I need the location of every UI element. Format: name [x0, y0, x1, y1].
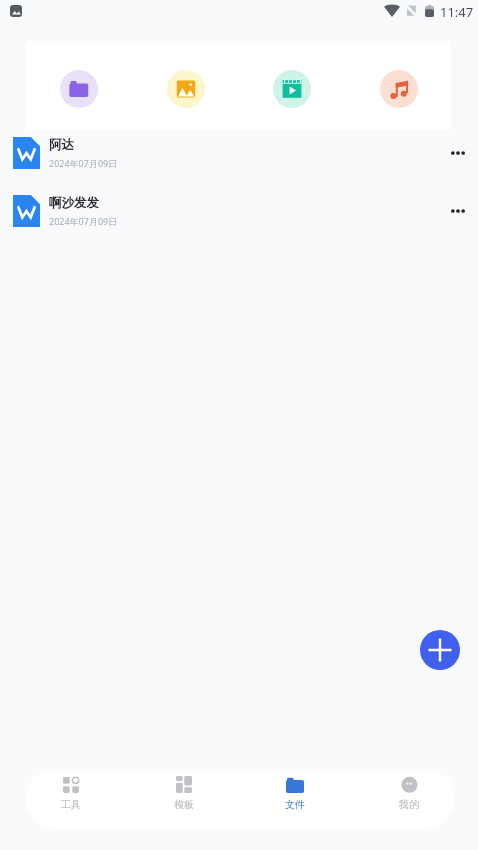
button[interactable]: 工具	[43, 769, 99, 828]
button[interactable]	[60, 70, 98, 108]
staticText: 我的	[399, 798, 419, 811]
button[interactable]: More options	[436, 131, 478, 175]
button[interactable]: 我的	[381, 769, 437, 828]
button[interactable]	[167, 70, 205, 108]
button[interactable]: More options	[436, 189, 478, 233]
staticText: 啊沙发发	[49, 195, 99, 211]
staticText: 2024年07月09日	[49, 215, 118, 227]
button[interactable]: 啊沙发发	[0, 193, 478, 251]
button[interactable]: 文件	[267, 769, 323, 828]
button[interactable]: 阿达	[0, 135, 478, 193]
staticText: 11:47	[440, 3, 474, 21]
staticText: 2024年07月09日	[49, 157, 118, 169]
button[interactable]: Add	[420, 630, 460, 670]
button[interactable]: 模板	[156, 769, 212, 828]
staticText: 阿达	[49, 137, 74, 153]
staticText: 模板	[174, 798, 194, 811]
button[interactable]	[380, 70, 418, 108]
button[interactable]	[273, 70, 311, 108]
staticText: 工具	[61, 798, 81, 811]
staticText: 文件	[285, 798, 305, 811]
other: Screenshot	[10, 5, 22, 17]
